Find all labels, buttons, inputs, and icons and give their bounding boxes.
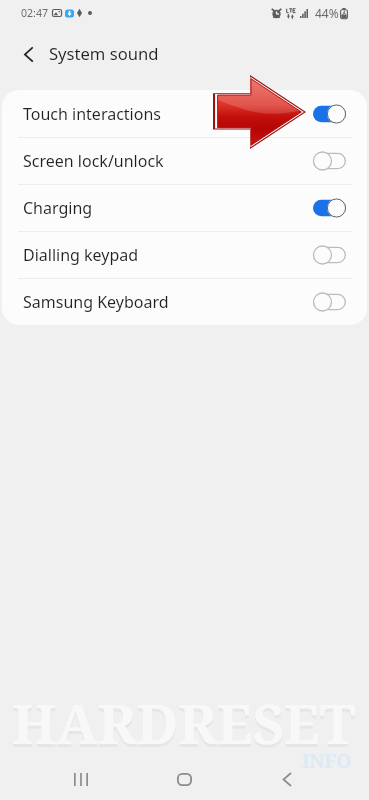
button[interactable]: Recent apps: [60, 758, 102, 800]
button[interactable]: Back: [266, 758, 308, 800]
staticText: Samsung Keyboard: [23, 291, 313, 313]
button[interactable]: Charging: [2, 184, 367, 231]
staticText: 44%: [315, 5, 339, 21]
staticText: Touch interactions: [23, 103, 313, 125]
staticText: Screen lock/unlock: [23, 150, 313, 172]
button[interactable]: Dialling keypad: [2, 231, 367, 278]
staticText: HARDRESET: [12, 686, 356, 760]
staticText: HARDRESET: [12, 689, 356, 763]
staticText: Charging: [23, 197, 313, 219]
staticText: 02:47: [21, 6, 49, 20]
button[interactable]: Home: [163, 758, 205, 800]
button[interactable]: Back: [9, 35, 47, 73]
button[interactable]: Screen lock/unlock: [2, 137, 367, 184]
staticText: INFO: [302, 748, 352, 774]
button[interactable]: Touch interactions: [2, 90, 367, 137]
button[interactable]: Samsung Keyboard: [2, 278, 367, 325]
staticText: Dialling keypad: [23, 244, 313, 266]
staticText: System sound: [49, 42, 159, 65]
